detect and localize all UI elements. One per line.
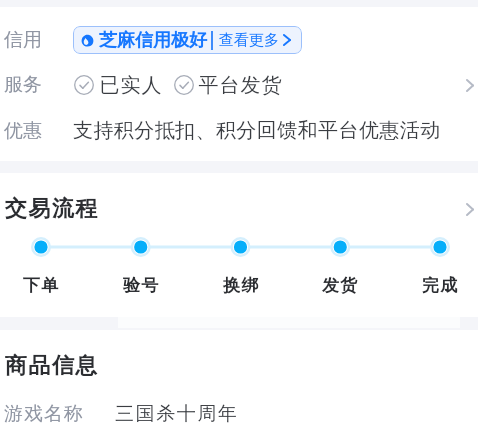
staticText: 已实人	[99, 73, 162, 98]
staticText: 游戏名称	[4, 402, 84, 426]
button[interactable]: 芝麻信用极好	[73, 26, 302, 54]
staticText: 查看更多	[219, 31, 279, 50]
button[interactable]: 服务	[0, 62, 478, 108]
staticText: 信用	[4, 28, 42, 52]
staticText: 交易流程	[4, 195, 98, 223]
staticText: 验号	[123, 275, 160, 296]
staticText: 商品信息	[4, 352, 98, 380]
button[interactable]: 优惠	[0, 108, 478, 153]
button[interactable]: 验号	[111, 272, 171, 298]
staticText: 完成	[422, 275, 459, 296]
button[interactable]: 交易流程	[0, 181, 478, 237]
button[interactable]: 游戏名称	[0, 394, 478, 434]
staticText: 下单	[23, 275, 60, 296]
button[interactable]: 下单	[11, 272, 71, 298]
button[interactable]: 换绑	[211, 272, 271, 298]
staticText: 芝麻信用极好	[99, 29, 207, 52]
staticText: 优惠	[4, 119, 42, 143]
button[interactable]: 发货	[310, 272, 370, 298]
staticText: 换绑	[223, 275, 260, 296]
staticText: 支持积分抵扣、积分回馈和平台优惠活动	[73, 118, 441, 143]
staticText: 服务	[4, 73, 42, 97]
staticText: 三国杀十周年	[115, 402, 239, 426]
other: 交易流程详情	[466, 203, 474, 216]
staticText: 发货	[322, 275, 359, 296]
button[interactable]: 商品信息	[0, 342, 478, 390]
button[interactable]: 信用	[0, 17, 478, 62]
other: 服务详情	[466, 79, 474, 92]
button[interactable]: 完成	[410, 272, 470, 298]
staticText: 平台发货	[198, 73, 282, 98]
